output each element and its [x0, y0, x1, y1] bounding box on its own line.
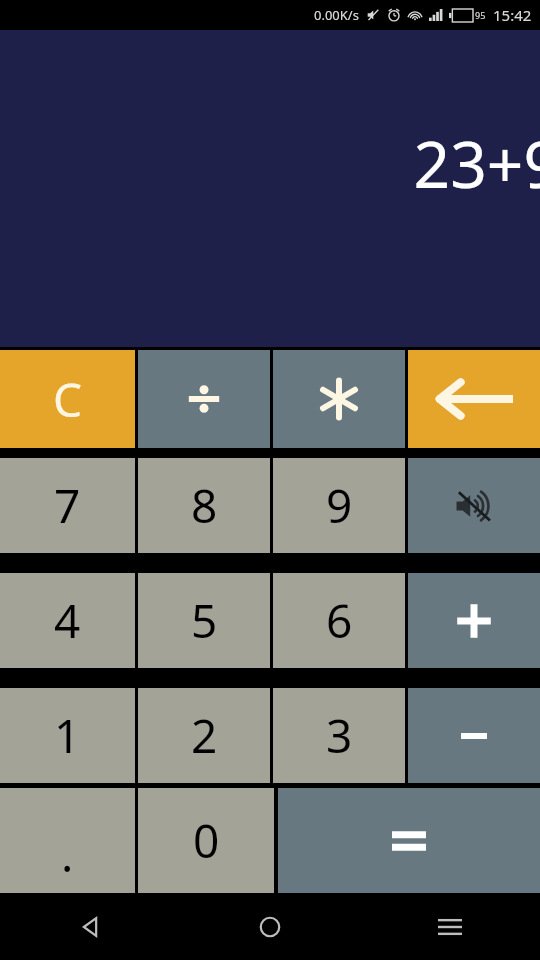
- button[interactable]: Minus: [408, 688, 540, 783]
- button[interactable]: 8: [138, 458, 270, 553]
- staticText: 0: [193, 809, 220, 872]
- button[interactable]: 1: [0, 688, 135, 783]
- button[interactable]: Equals: [278, 788, 540, 893]
- staticText: 3: [326, 704, 353, 767]
- button[interactable]: C: [0, 350, 135, 448]
- button[interactable]: .: [0, 788, 135, 893]
- button[interactable]: Home: [180, 893, 360, 960]
- button[interactable]: 7: [0, 458, 135, 553]
- button[interactable]: 4: [0, 573, 135, 668]
- staticText: 2: [191, 704, 218, 767]
- button[interactable]: Recent apps: [360, 893, 540, 960]
- button[interactable]: 9: [273, 458, 405, 553]
- staticText: 95: [475, 9, 486, 21]
- button[interactable]: 5: [138, 573, 270, 668]
- staticText: 9: [326, 474, 353, 537]
- staticText: 6: [326, 589, 353, 652]
- button[interactable]: Mute sound: [408, 458, 540, 553]
- staticText: 0.00K/s: [314, 6, 359, 24]
- button[interactable]: 3: [273, 688, 405, 783]
- staticText: C: [53, 368, 83, 431]
- button[interactable]: Backspace: [408, 350, 540, 448]
- button[interactable]: 2: [138, 688, 270, 783]
- staticText: 5: [191, 589, 218, 652]
- button[interactable]: Back: [0, 893, 180, 960]
- button[interactable]: 0: [138, 788, 274, 893]
- staticText: 8: [191, 474, 218, 537]
- button[interactable]: Plus: [408, 573, 540, 668]
- staticText: .: [61, 823, 74, 886]
- staticText: 23+9: [413, 120, 540, 207]
- button[interactable]: Divide: [138, 350, 270, 448]
- staticText: 4: [54, 589, 81, 652]
- staticText: 7: [54, 474, 81, 537]
- staticText: 15:42: [493, 5, 532, 25]
- button[interactable]: Multiply: [273, 350, 405, 448]
- staticText: 1: [54, 704, 81, 767]
- button[interactable]: 6: [273, 573, 405, 668]
